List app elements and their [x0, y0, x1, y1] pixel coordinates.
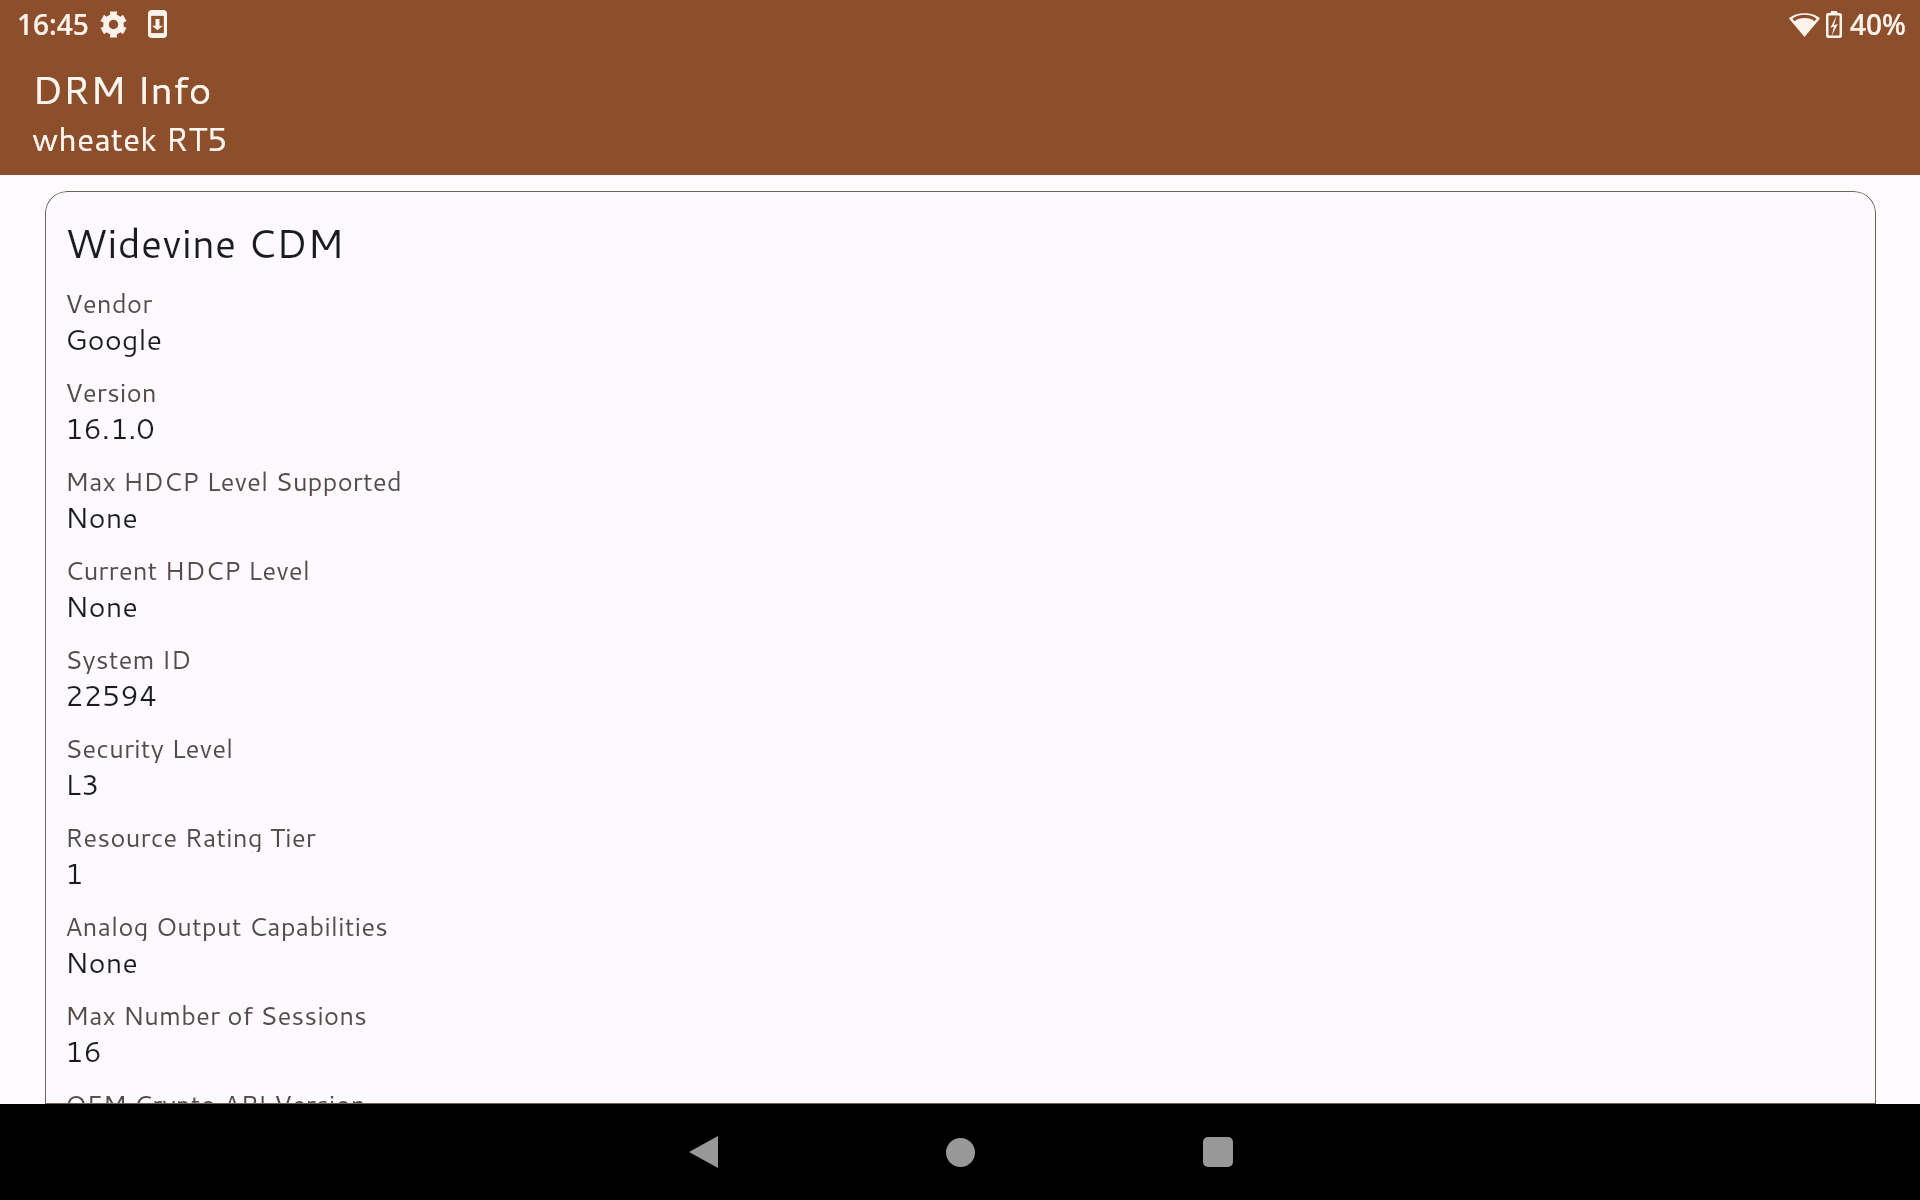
staticText: Analog Output Capabilities: [65, 908, 389, 941]
staticText: 16:45: [17, 5, 89, 43]
button[interactable]: Recents: [1169, 1104, 1266, 1200]
staticText: OEM Crypto API Version: [65, 1086, 366, 1104]
staticText: Google: [65, 318, 163, 359]
button[interactable]: Back: [655, 1104, 752, 1200]
staticText: 16: [65, 1030, 102, 1071]
staticText: Max HDCP Level Supported: [65, 463, 402, 496]
staticText: Version: [65, 374, 157, 407]
staticText: System ID: [65, 641, 192, 674]
staticText: Security Level: [65, 730, 234, 763]
staticText: 22594: [65, 674, 158, 715]
staticText: L3: [65, 763, 100, 804]
button[interactable]: Home: [912, 1104, 1009, 1200]
staticText: None: [65, 941, 138, 982]
staticText: None: [65, 496, 138, 537]
staticText: Current HDCP Level: [65, 552, 310, 585]
staticText: None: [65, 585, 138, 626]
staticText: 1: [65, 852, 84, 893]
staticText: Resource Rating Tier: [65, 819, 316, 852]
staticText: wheatek RT5: [32, 116, 228, 161]
staticText: DRM Info: [32, 61, 212, 116]
staticText: 40%: [1850, 5, 1906, 43]
staticText: Vendor: [65, 285, 153, 318]
staticText: Widevine CDM: [65, 214, 344, 271]
staticText: 16.1.0: [65, 407, 155, 448]
staticText: Max Number of Sessions: [65, 997, 368, 1030]
